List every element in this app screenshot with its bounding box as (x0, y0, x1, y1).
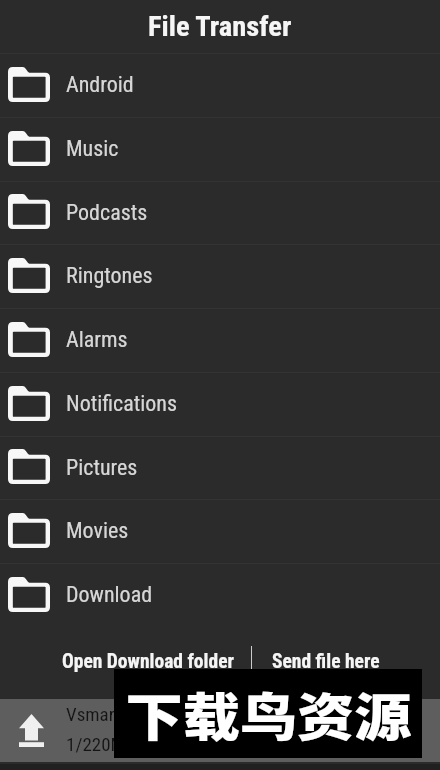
button[interactable]: Notifications (0, 372, 440, 436)
other: Upload (19, 714, 44, 747)
staticText: Send file here (272, 650, 380, 673)
button[interactable]: Podcasts (0, 181, 440, 244)
staticText: File Transfer (148, 10, 292, 43)
staticText: Alarms (66, 327, 128, 353)
staticText: Android (66, 72, 134, 98)
staticText: Podcasts (66, 200, 148, 226)
staticText: Open Download folder (62, 650, 234, 673)
staticText: Music (66, 136, 119, 162)
staticText: Pictures (66, 455, 138, 481)
staticText: Download (66, 582, 153, 608)
button[interactable]: Movies (0, 499, 440, 563)
button[interactable]: Open Download folder (0, 625, 251, 699)
button[interactable]: Music (0, 117, 440, 181)
button[interactable]: Alarms (0, 308, 440, 372)
staticText: Vsmart Joy 3 1/220MB (66, 703, 166, 755)
staticText: Movies (66, 518, 129, 544)
button[interactable]: Android (0, 53, 440, 117)
button[interactable]: Upload (0, 699, 440, 762)
staticText: 下载鸟资源 (125, 677, 412, 750)
button[interactable]: Download (0, 563, 440, 627)
staticText: Ringtones (66, 263, 153, 289)
button[interactable]: Send file here (252, 625, 440, 699)
button[interactable]: Ringtones (0, 244, 440, 308)
staticText: Notifications (66, 391, 178, 417)
button[interactable]: Pictures (0, 436, 440, 499)
